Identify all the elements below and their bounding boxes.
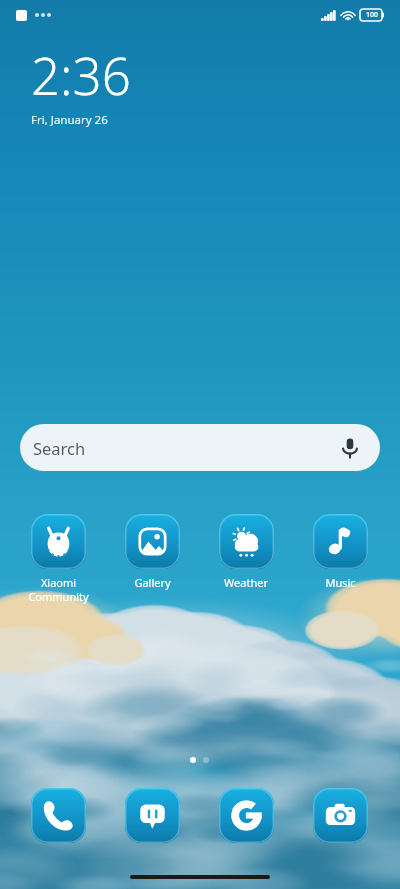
button[interactable]: Google xyxy=(219,788,274,843)
button[interactable]: Camera xyxy=(313,788,368,843)
staticText: Gallery xyxy=(134,575,171,590)
staticText: Xiaomi Community xyxy=(28,575,89,604)
staticText: Search xyxy=(33,437,86,459)
staticText: 100 xyxy=(366,10,379,20)
button[interactable]: Gallery xyxy=(105,514,199,590)
button[interactable]: Messages xyxy=(125,788,180,843)
staticText: 2:36 xyxy=(31,40,131,109)
staticText: Weather xyxy=(224,575,268,590)
staticText: Music xyxy=(325,575,356,590)
button[interactable]: Music xyxy=(293,514,387,590)
button[interactable]: Search xyxy=(20,424,380,471)
staticText: Fri, January 26 xyxy=(31,112,108,128)
button[interactable]: Voice search xyxy=(337,435,363,461)
button[interactable]: Phone xyxy=(31,788,86,843)
button[interactable]: Weather xyxy=(199,514,293,590)
button[interactable]: Xiaomi Community xyxy=(11,514,105,604)
